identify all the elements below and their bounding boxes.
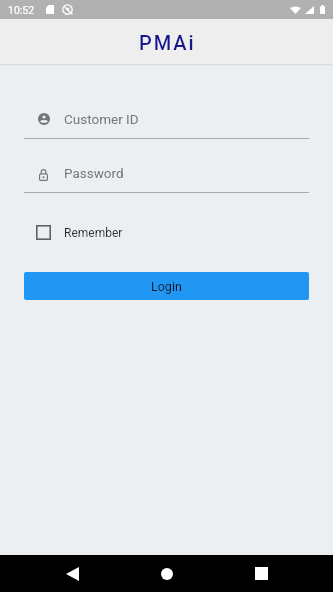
button[interactable]: Login [24,272,309,300]
staticText: Login [151,279,182,294]
staticText: Remember [64,226,123,240]
staticText: PMAi [139,31,196,54]
button[interactable]: Customer ID [24,112,309,139]
staticText: Customer ID [64,111,139,127]
staticText: 10:52 [8,4,35,16]
button[interactable]: Home [145,555,189,592]
button[interactable]: Recent apps [239,555,283,592]
staticText: Password [64,165,124,181]
button[interactable]: Remember [24,223,123,243]
button[interactable]: Password [24,166,309,193]
button[interactable]: Back [50,555,94,592]
